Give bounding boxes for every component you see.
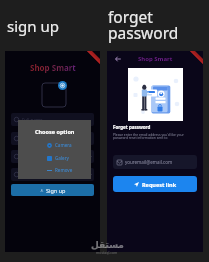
staticText: Sign up: [46, 187, 66, 194]
button[interactable]: Full name: [14, 113, 91, 126]
button[interactable]: Change photo: [58, 81, 67, 90]
button[interactable]: youremail@email.com: [117, 155, 193, 169]
staticText: forget password: [108, 6, 179, 43]
button[interactable]: Sign up: [11, 184, 94, 196]
staticText: مستقل: [91, 240, 124, 250]
button[interactable]: Remove: [47, 167, 73, 173]
staticText: Please enter the email address you'd lik…: [113, 132, 184, 140]
staticText: Choose option: [35, 128, 75, 135]
button[interactable]: Camera: [47, 142, 72, 148]
staticText: Galery: [55, 155, 69, 161]
staticText: Shop Smart: [30, 62, 76, 73]
staticText: youremail@email.com: [125, 159, 173, 165]
button[interactable]: Galery: [47, 155, 69, 161]
button[interactable]: Request link: [113, 176, 197, 192]
button[interactable]: Password: [14, 150, 91, 163]
staticText: Remove: [55, 167, 73, 173]
staticText: Shop Smart: [138, 55, 173, 63]
staticText: Camera: [55, 142, 72, 148]
button[interactable]: Confirm password: [14, 168, 91, 181]
button[interactable]: Back: [114, 55, 122, 63]
staticText: mostaql.com: [96, 250, 118, 255]
staticText: Request link: [142, 181, 177, 188]
staticText: sign up: [7, 16, 59, 36]
staticText: Forget password: [113, 124, 151, 130]
button[interactable]: Email: [14, 132, 91, 145]
staticText: Full name: [22, 117, 43, 123]
